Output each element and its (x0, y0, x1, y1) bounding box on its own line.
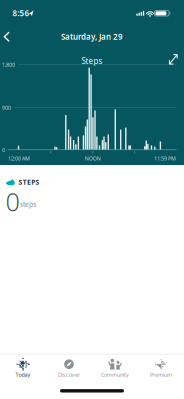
staticText: 900 (2, 104, 11, 111)
staticText: STEPS (18, 178, 40, 187)
staticText: Today (15, 371, 30, 378)
button[interactable]: Today (0, 356, 46, 380)
staticText: 0 (5, 184, 19, 218)
staticText: Premium (150, 371, 172, 378)
button[interactable]: Community (92, 356, 138, 380)
staticText: 1,800 (2, 61, 15, 68)
staticText: NOON (85, 155, 101, 162)
staticText: 12:00 AM (8, 155, 30, 162)
staticText: Discover (58, 371, 80, 378)
staticText: steps (20, 200, 36, 209)
staticText: 8:56 (12, 8, 29, 18)
staticText: Saturday, Jan 29 (61, 31, 123, 42)
button[interactable]: Discover (46, 356, 92, 380)
button[interactable]: Expand chart (167, 53, 179, 65)
staticText: 11:59 PM (154, 155, 176, 162)
staticText: Community (101, 371, 129, 378)
button[interactable]: Back (2, 32, 11, 41)
button[interactable]: Premium (138, 356, 184, 380)
staticText: Steps (81, 55, 102, 66)
staticText: 0 (2, 146, 5, 154)
